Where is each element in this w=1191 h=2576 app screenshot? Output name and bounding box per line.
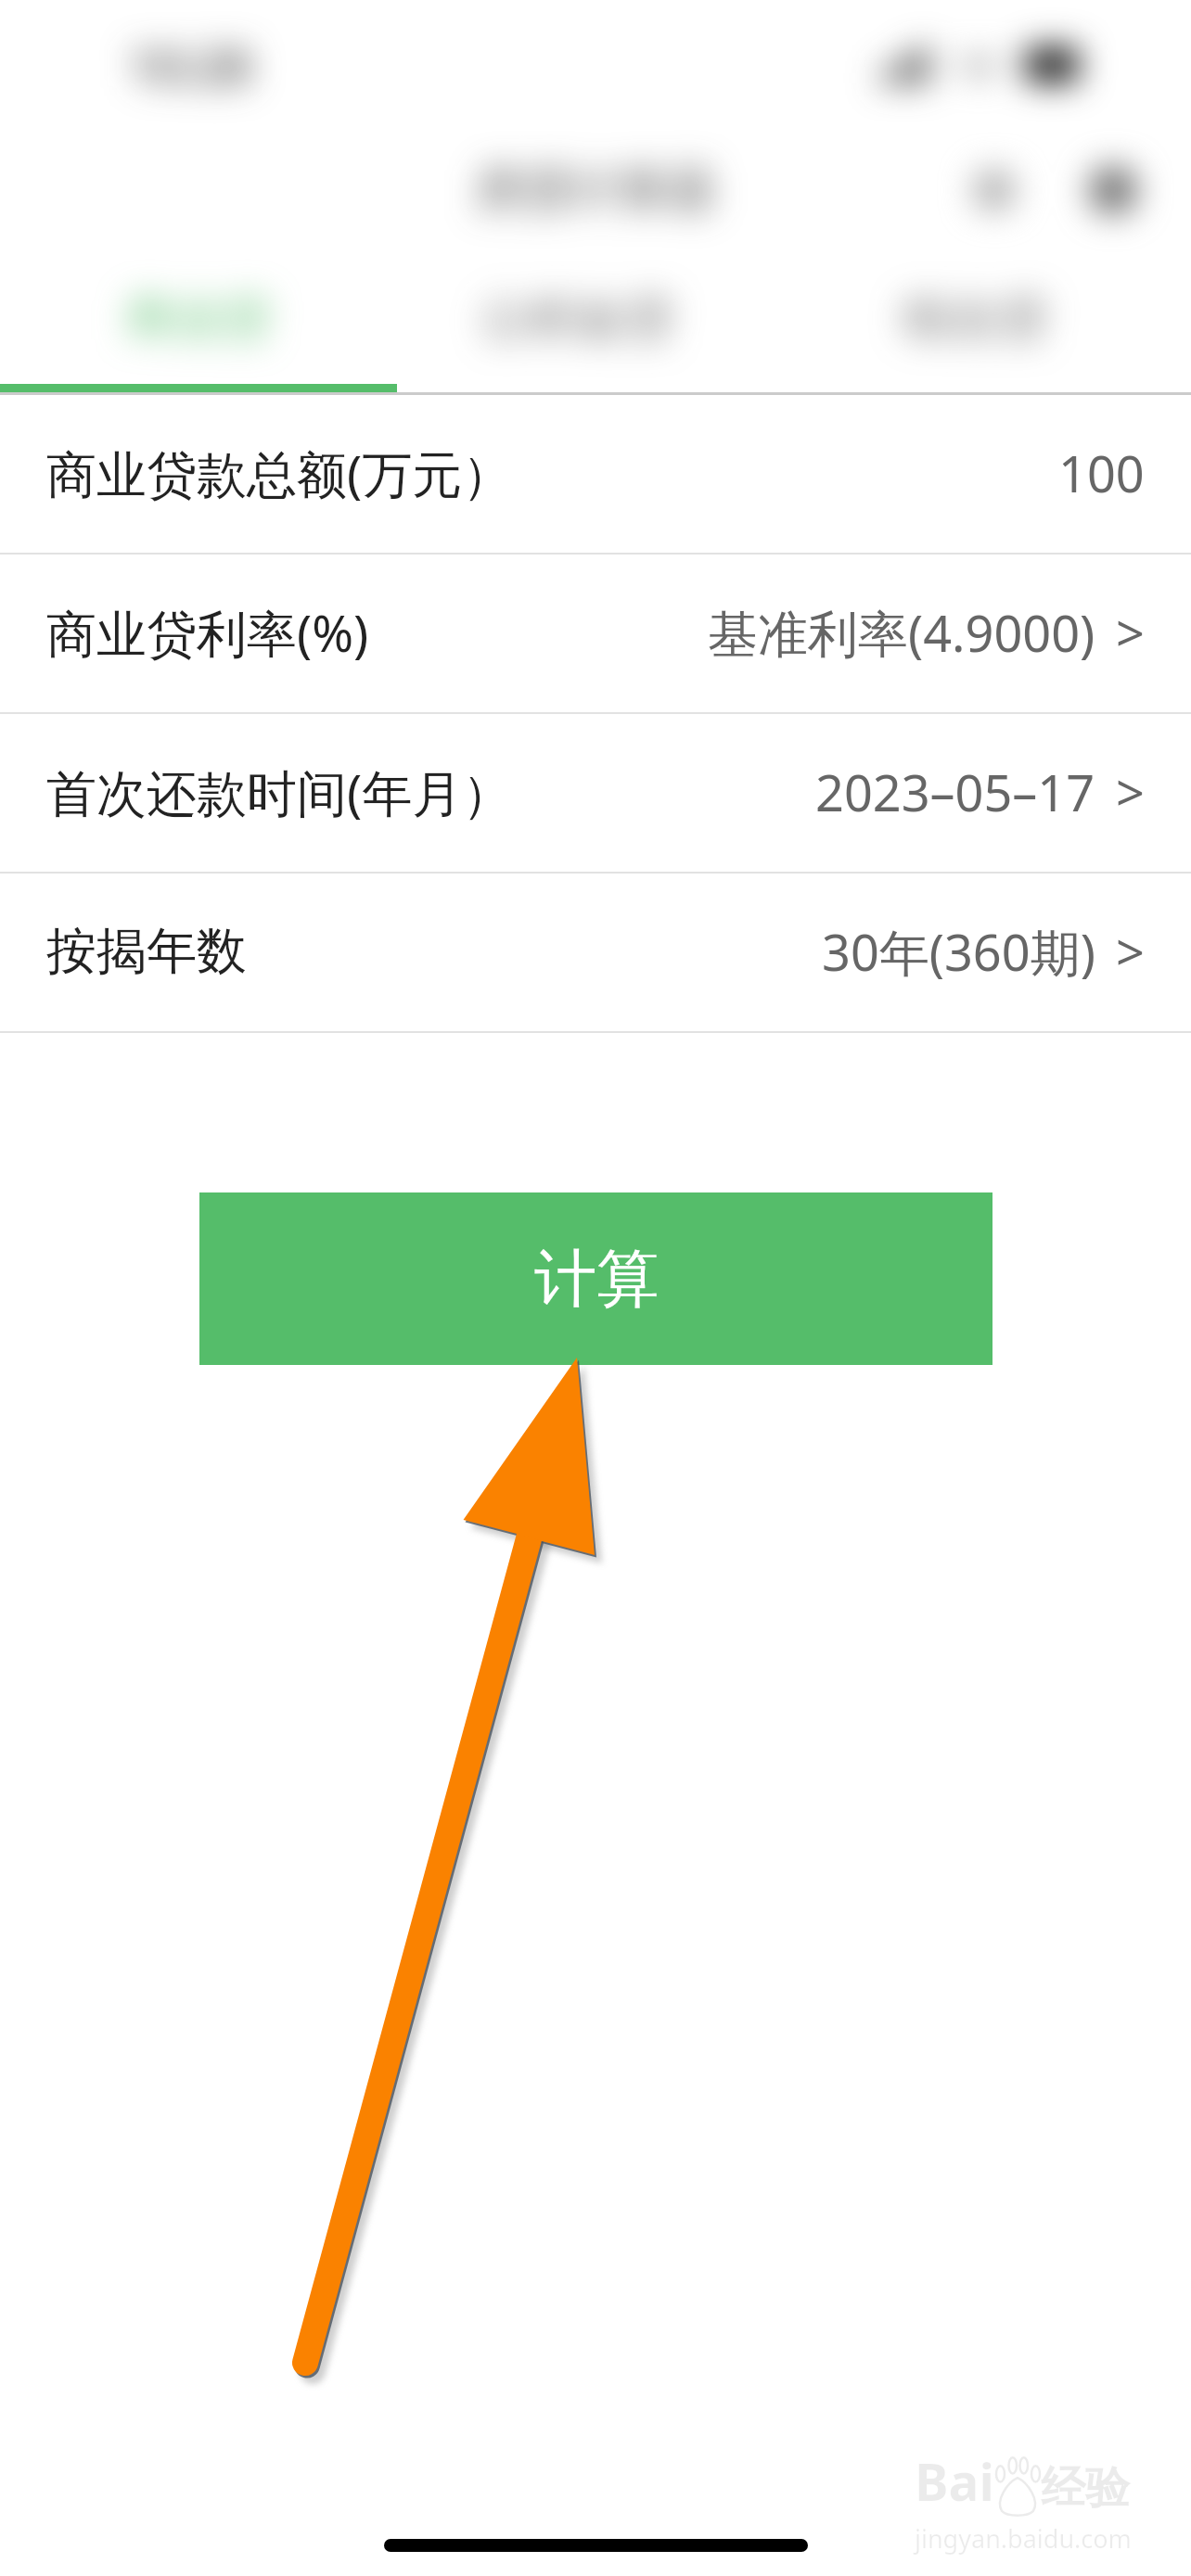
- staticText: 经验: [1041, 2460, 1130, 2516]
- button[interactable]: 首次还款时间(年月）: [0, 714, 1191, 874]
- staticText: 商业贷利率(%): [46, 598, 369, 667]
- staticText: 公积金贷: [480, 288, 673, 350]
- staticText: 2023–05–17: [815, 758, 1095, 826]
- staticText: 100: [1058, 439, 1145, 507]
- button[interactable]: 组合贷: [776, 263, 1173, 375]
- button[interactable]: 计算: [199, 1192, 992, 1365]
- staticText: 按揭年数: [46, 920, 247, 983]
- button[interactable]: 公积金贷: [378, 263, 775, 375]
- button[interactable]: 按揭年数: [0, 874, 1191, 1033]
- button[interactable]: 商业贷款总额(万元）: [0, 395, 1191, 555]
- staticText: 30年(360期): [822, 917, 1095, 986]
- staticText: 商业贷款总额(万元）: [46, 439, 513, 507]
- staticText: >: [1116, 758, 1145, 826]
- button[interactable]: 商业贷: [0, 263, 397, 375]
- staticText: jingyan.baidu.com: [915, 2521, 1132, 2556]
- staticText: 首次还款时间(年月）: [46, 758, 513, 826]
- button[interactable]: 商业贷利率(%): [0, 555, 1191, 714]
- button[interactable]: More options: [1089, 166, 1137, 214]
- staticText: >: [1116, 917, 1145, 986]
- staticText: 商业贷: [126, 288, 271, 350]
- staticText: 基准利率(4.9000): [708, 598, 1095, 667]
- staticText: 组合贷: [903, 288, 1047, 350]
- button[interactable]: Share: [974, 170, 1015, 210]
- staticText: 房贷计算器: [475, 159, 716, 221]
- staticText: 计算: [534, 1240, 659, 1318]
- staticText: >: [1116, 598, 1145, 667]
- staticText: 10:28: [128, 32, 252, 98]
- staticText: Bai: [915, 2446, 994, 2516]
